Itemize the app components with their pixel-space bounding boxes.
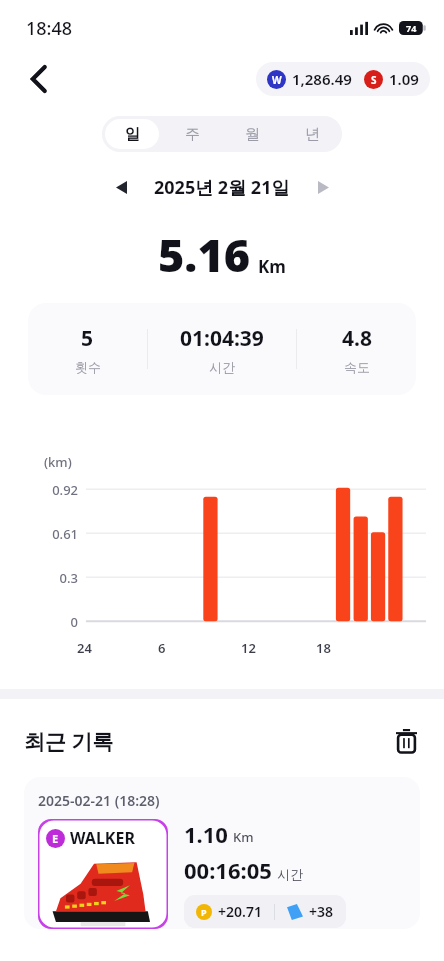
staticText: 00:16:05	[184, 855, 272, 885]
staticText: 0.61	[40, 525, 78, 543]
staticText: 2025-02-21 (18:28)	[38, 791, 160, 810]
staticText: 0.92	[40, 481, 78, 499]
button[interactable]: 월	[225, 119, 279, 149]
staticText: +38	[309, 902, 334, 921]
staticText: 0.3	[40, 569, 78, 587]
staticText: 2025년 2월 21일	[154, 175, 290, 200]
button[interactable]: 2025-02-21 (18:28)	[24, 777, 420, 929]
staticText: 18:48	[26, 16, 73, 41]
button[interactable]: 주	[165, 119, 219, 149]
staticText: 주	[185, 125, 200, 144]
staticText: S	[371, 73, 377, 87]
staticText: 월	[245, 125, 260, 144]
button[interactable]: 5	[28, 303, 416, 395]
staticText: W	[272, 73, 282, 87]
button[interactable]: Delete records	[386, 721, 426, 761]
staticText: Km	[258, 255, 286, 278]
staticText: E	[52, 831, 59, 846]
button[interactable]: E	[38, 819, 168, 929]
button[interactable]: Next day	[308, 172, 338, 202]
staticText: 시간	[277, 866, 303, 882]
button[interactable]: W	[256, 62, 430, 96]
staticText: 4.8	[342, 324, 372, 353]
button[interactable]: P	[184, 895, 346, 928]
staticText: +20.71	[218, 902, 262, 921]
staticText: 0	[40, 613, 78, 631]
staticText: 최근 기록	[24, 727, 114, 756]
staticText: 01:04:39	[180, 324, 264, 353]
button[interactable]: Back	[18, 58, 60, 100]
staticText: 74	[406, 22, 417, 34]
button[interactable]: Previous day	[106, 172, 136, 202]
staticText: 5.16	[158, 224, 251, 285]
staticText: 속도	[344, 359, 370, 375]
staticText: 1.10	[184, 819, 228, 849]
staticText: 시간	[209, 359, 235, 375]
button[interactable]: 일	[105, 119, 159, 149]
staticText: 24	[77, 639, 92, 657]
staticText: 12	[241, 639, 256, 657]
staticText: 6	[158, 639, 166, 657]
staticText: 5	[81, 324, 94, 353]
staticText: P	[201, 906, 207, 918]
staticText: 일	[125, 125, 140, 144]
staticText: 횟수	[75, 359, 101, 375]
button[interactable]: 년	[285, 119, 339, 149]
staticText: Km	[233, 828, 254, 846]
staticText: WALKER	[70, 827, 135, 849]
staticText: 1.09	[389, 69, 419, 89]
staticText: 년	[305, 125, 320, 144]
staticText: (km)	[44, 453, 72, 471]
staticText: 18	[316, 639, 331, 657]
staticText: 1,286.49	[292, 69, 352, 89]
